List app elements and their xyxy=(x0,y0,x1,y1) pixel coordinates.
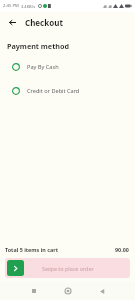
button[interactable]: Credit or Debit Card xyxy=(0,84,135,98)
staticText: Credit or Debit Card xyxy=(27,87,80,95)
button[interactable]: Back xyxy=(5,15,19,29)
other: Swipe to place order xyxy=(7,260,24,276)
staticText: Payment method xyxy=(7,41,69,51)
button[interactable]: Back xyxy=(91,282,113,300)
button[interactable]: Home xyxy=(57,282,79,300)
staticText: 2:45 PM xyxy=(3,3,19,9)
button[interactable]: Swipe to place order xyxy=(5,258,130,278)
staticText: 90.00 xyxy=(115,246,129,253)
staticText: Total 5 items in cart xyxy=(5,246,58,253)
staticText: 3.4KB/s xyxy=(21,4,36,9)
button[interactable]: Recents xyxy=(23,282,45,300)
staticText: Checkout xyxy=(25,17,63,28)
button[interactable]: Pay By Cash xyxy=(0,60,135,74)
staticText: Pay By Cash xyxy=(27,63,59,71)
staticText: Swipe to place order xyxy=(42,265,94,272)
